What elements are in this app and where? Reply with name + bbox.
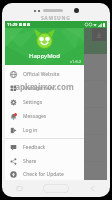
button[interactable]: Settings — [5, 95, 84, 109]
staticText: apkmirror.com — [15, 81, 74, 92]
staticText: Settings — [23, 99, 43, 106]
button[interactable]: Management — [5, 81, 84, 95]
staticText: Share — [23, 158, 37, 165]
button[interactable]: Official Website — [5, 67, 84, 81]
staticText: Official Website — [23, 71, 60, 78]
staticText: Messages — [23, 113, 47, 120]
button[interactable]: Messages — [5, 109, 84, 123]
staticText: Check for Update — [23, 171, 64, 178]
button[interactable]: Log in — [5, 123, 84, 137]
staticText: v1.6.2 — [70, 59, 82, 64]
staticText: HappyMod — [29, 52, 60, 60]
button[interactable]: Share — [5, 154, 84, 168]
button[interactable]: Feedback — [5, 140, 84, 154]
button[interactable]: Check for Update — [5, 168, 84, 180]
staticText: Feedback — [23, 144, 46, 151]
staticText: 11:29 — [7, 22, 18, 27]
staticText: SAMSUNG — [41, 15, 71, 21]
staticText: Management — [23, 85, 55, 92]
staticText: Log in — [23, 127, 38, 134]
